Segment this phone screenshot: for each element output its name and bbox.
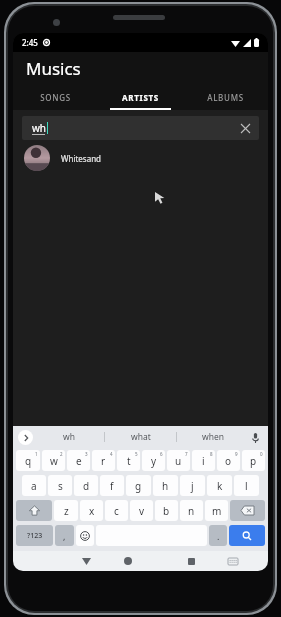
staticText: w: [50, 454, 58, 468]
staticText: y: [151, 454, 157, 468]
staticText: 4: [110, 451, 113, 457]
staticText: g: [135, 479, 142, 493]
button[interactable]: k: [207, 475, 232, 496]
button[interactable]: Recent apps: [171, 551, 212, 571]
button[interactable]: j: [180, 475, 205, 496]
staticText: 5: [135, 451, 138, 457]
staticText: n: [188, 504, 195, 518]
button[interactable]: e: [67, 450, 90, 471]
button[interactable]: u: [167, 450, 190, 471]
staticText: 3: [85, 451, 88, 457]
button[interactable]: Home: [107, 551, 148, 571]
button[interactable]: Whitesand: [13, 140, 268, 176]
button[interactable]: ARTISTS: [98, 84, 183, 110]
staticText: o: [225, 454, 232, 468]
staticText: wh: [32, 121, 47, 135]
button[interactable]: g: [126, 475, 151, 496]
button[interactable]: r: [92, 450, 115, 471]
button[interactable]: what: [105, 426, 176, 448]
staticText: Musics: [26, 57, 81, 80]
button[interactable]: n: [180, 500, 203, 521]
button[interactable]: s: [48, 475, 72, 496]
button[interactable]: ?123: [16, 525, 53, 546]
button[interactable]: Search: [229, 525, 265, 546]
staticText: c: [114, 504, 119, 518]
button[interactable]: p: [242, 450, 265, 471]
button[interactable]: ,: [55, 525, 74, 546]
staticText: .: [217, 530, 220, 542]
staticText: d: [83, 479, 90, 493]
staticText: l: [245, 479, 248, 493]
button[interactable]: Switch keyboard: [212, 551, 253, 571]
staticText: z: [64, 504, 69, 518]
button[interactable]: b: [155, 500, 178, 521]
button[interactable]: w: [42, 450, 65, 471]
button[interactable]: [76, 525, 94, 546]
button[interactable]: Clear search: [237, 120, 253, 136]
staticText: wh: [63, 431, 75, 443]
staticText: h: [162, 479, 169, 493]
button[interactable]: v: [130, 500, 153, 521]
staticText: 8: [210, 451, 213, 457]
button[interactable]: o: [217, 450, 240, 471]
button[interactable]: .: [209, 525, 227, 546]
button[interactable]: l: [234, 475, 259, 496]
staticText: p: [250, 454, 257, 468]
staticText: 2: [60, 451, 63, 457]
staticText: what: [131, 431, 151, 443]
staticText: r: [101, 454, 106, 468]
staticText: ?123: [27, 531, 43, 541]
button[interactable]: x: [80, 500, 103, 521]
button[interactable]: y: [142, 450, 165, 471]
button[interactable]: More suggestions: [18, 430, 33, 445]
staticText: ARTISTS: [122, 92, 159, 103]
button[interactable]: Voice input: [248, 430, 263, 445]
staticText: 9: [235, 451, 238, 457]
button[interactable]: ALBUMS: [183, 84, 268, 110]
staticText: ,: [63, 530, 66, 542]
staticText: Whitesand: [61, 153, 102, 164]
button[interactable]: m: [205, 500, 228, 521]
staticText: q: [25, 454, 32, 468]
staticText: b: [163, 504, 170, 518]
staticText: when: [202, 431, 224, 443]
staticText: ALBUMS: [207, 92, 244, 103]
staticText: a: [31, 479, 37, 493]
staticText: e: [76, 454, 82, 468]
button[interactable]: Backspace: [230, 500, 265, 521]
staticText: 2:45: [22, 37, 38, 48]
staticText: 0: [260, 451, 263, 457]
button[interactable]: Back: [66, 551, 107, 571]
button[interactable]: q: [16, 450, 40, 471]
staticText: k: [217, 479, 223, 493]
button[interactable]: f: [100, 475, 124, 496]
staticText: x: [89, 504, 95, 518]
button[interactable]: h: [153, 475, 178, 496]
staticText: 6: [160, 451, 163, 457]
button[interactable]: i: [192, 450, 215, 471]
staticText: v: [139, 504, 145, 518]
button[interactable]: SONGS: [13, 84, 98, 110]
staticText: 7: [185, 451, 188, 457]
button[interactable]: t: [117, 450, 140, 471]
staticText: s: [58, 479, 63, 493]
staticText: f: [110, 479, 114, 493]
button[interactable]: wh: [22, 116, 259, 140]
staticText: i: [202, 454, 205, 468]
staticText: t: [127, 454, 131, 468]
button[interactable]: Shift: [16, 500, 52, 521]
staticText: 1: [35, 451, 38, 457]
button[interactable]: d: [74, 475, 98, 496]
button[interactable]: a: [22, 475, 46, 496]
staticText: SONGS: [40, 92, 71, 103]
button[interactable]: c: [105, 500, 128, 521]
staticText: j: [191, 479, 194, 493]
staticText: u: [175, 454, 182, 468]
staticText: m: [212, 504, 222, 518]
button[interactable]: when: [177, 426, 248, 448]
button[interactable]: wh: [33, 426, 104, 448]
button[interactable]: z: [54, 500, 78, 521]
